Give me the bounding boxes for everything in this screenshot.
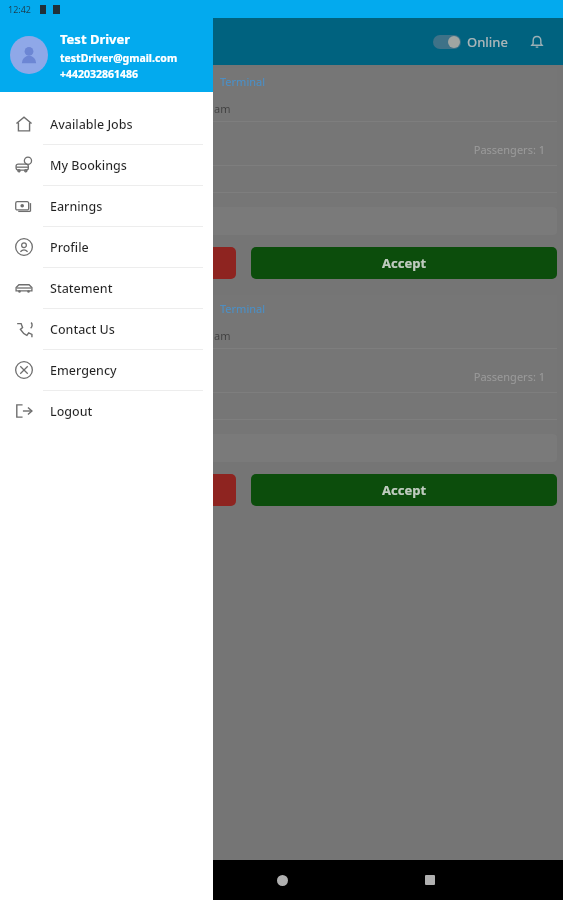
button[interactable]: Earnings [0, 186, 213, 226]
staticText: am [214, 101, 231, 116]
button[interactable]: Reject [6, 474, 236, 506]
staticText: £50 [109, 213, 131, 230]
staticText: Online [467, 33, 508, 51]
staticText: Terminal [220, 301, 266, 316]
button[interactable]: Home [267, 865, 297, 895]
staticText: 12:42 [8, 3, 32, 15]
staticText: Emergency [50, 362, 117, 379]
staticText: Accept [382, 254, 427, 272]
button[interactable]: Accept [251, 474, 557, 506]
button[interactable]: Available Jobs [0, 104, 213, 144]
staticText: Available Jobs [50, 116, 133, 133]
button[interactable]: Logout [0, 391, 213, 431]
staticText: Your Earnings: [16, 213, 109, 230]
button[interactable]: Emergency [0, 350, 213, 390]
staticText: Reject [101, 254, 142, 272]
staticText: Logout [50, 403, 93, 420]
button[interactable]: Recents [415, 865, 445, 895]
button[interactable]: Statement [0, 268, 213, 308]
staticText: Passengers: 1 [6, 142, 545, 157]
staticText: Test Driver [60, 30, 131, 48]
button[interactable]: Reject [6, 247, 236, 279]
staticText: +442032861486 [60, 67, 139, 81]
staticText: Statement [50, 280, 113, 297]
button[interactable]: Online [424, 28, 517, 56]
button[interactable]: My Bookings [0, 145, 213, 185]
staticText: Passengers: 1 [6, 369, 545, 384]
button[interactable]: Contact Us [0, 309, 213, 349]
staticText: Contact Us [50, 321, 115, 338]
button[interactable]: Notifications [521, 26, 553, 58]
staticText: Profile [50, 239, 89, 256]
staticText: Home [16, 30, 65, 53]
staticText: Terminal [220, 74, 266, 89]
button[interactable]: Accept [251, 247, 557, 279]
staticText: Earnings [50, 198, 103, 215]
staticText: am [214, 328, 231, 343]
staticText: testDriver@gmail.com [60, 51, 178, 65]
button[interactable]: Profile [0, 227, 213, 267]
staticText: My Bookings [50, 157, 127, 174]
staticText: Accept [382, 481, 427, 499]
